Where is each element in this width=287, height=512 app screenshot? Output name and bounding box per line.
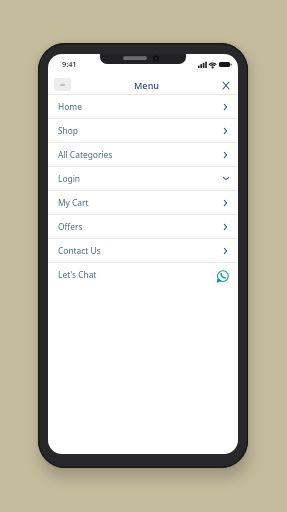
button[interactable]: Shop [48,119,238,142]
button[interactable]: Let's Chat [48,263,238,286]
staticText: Login [58,173,223,184]
staticText: My Cart [58,197,224,208]
button[interactable] [216,270,229,283]
button[interactable]: Home [48,95,238,118]
staticText: Home [58,101,224,112]
button[interactable]: All Categories [48,143,238,166]
staticText: Contact Us [58,245,224,256]
button[interactable] [217,77,235,94]
staticText: Offers [58,221,224,232]
staticText: Let's Chat [58,269,216,280]
button[interactable]: Login [48,167,238,190]
staticText: 9:41 [62,59,77,69]
button[interactable]: Contact Us [48,239,238,262]
staticText: Shop [58,125,224,136]
button[interactable]: My Cart [48,191,238,214]
staticText: All Categories [58,149,224,160]
button[interactable]: Offers [48,215,238,238]
staticText: Menu [134,79,160,91]
button[interactable] [54,78,71,91]
